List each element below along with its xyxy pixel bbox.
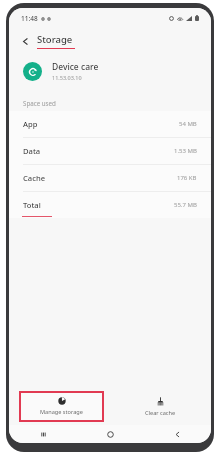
button[interactable]: Back [18,34,32,48]
button[interactable]: Manage storage [21,393,102,420]
staticText: 176 KB [177,174,197,182]
staticText: Clear cache [145,409,176,417]
button[interactable]: Data [9,138,211,164]
button[interactable]: Recents [9,425,77,443]
staticText: 11:48 [21,14,38,23]
staticText: 11.53.03.10 [52,74,82,81]
staticText: Total [23,200,41,210]
staticText: App [23,119,38,129]
staticText: Cache [23,173,46,183]
staticText: Space used [23,99,56,107]
button[interactable]: Clear cache [110,389,211,425]
staticText: Storage [37,33,73,46]
staticText: 54 MB [179,120,197,128]
button[interactable]: Back [144,425,211,443]
button[interactable]: Cache [9,165,211,191]
button[interactable]: Home [77,425,144,443]
button[interactable]: Total [9,192,211,218]
button[interactable]: App [9,111,211,137]
staticText: 1.53 MB [174,147,197,155]
staticText: Manage storage [40,408,83,416]
staticText: Data [23,146,41,156]
button[interactable]: Device care [9,54,211,88]
staticText: Device care [52,61,99,73]
staticText: 55.7 MB [174,201,197,209]
